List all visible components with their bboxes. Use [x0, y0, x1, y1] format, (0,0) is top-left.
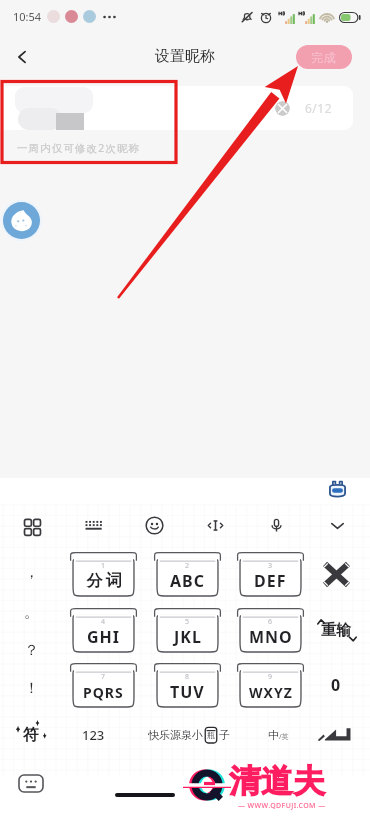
staticText: 设置昵称	[155, 47, 215, 66]
button[interactable]: Delete	[308, 552, 364, 596]
button[interactable]: Apps	[15, 508, 49, 542]
staticText: 123	[82, 726, 105, 744]
staticText: ，	[24, 563, 39, 582]
button[interactable]: 4	[70, 608, 137, 652]
button[interactable]: 快乐源泉小	[124, 717, 254, 753]
button[interactable]: Move cursor	[198, 508, 232, 542]
button[interactable]: 。	[10, 598, 52, 626]
button[interactable]: 123	[70, 717, 116, 753]
staticText: 完成	[311, 50, 337, 65]
button[interactable]: Keyboard theme mascot	[327, 479, 348, 500]
button[interactable]: Hide keyboard	[320, 508, 354, 542]
staticText: 一周内仅可修改2次昵称	[17, 141, 141, 155]
button[interactable]: 6	[237, 608, 304, 652]
staticText: 中	[268, 728, 279, 742]
button[interactable]: Keyboard layout	[76, 508, 110, 542]
button[interactable]: 8	[154, 663, 221, 707]
button[interactable]: 重输	[308, 608, 364, 652]
button[interactable]: 5	[154, 608, 221, 652]
staticText: 瓶	[207, 730, 215, 740]
staticText: 符	[23, 725, 39, 745]
staticText: 清道夫	[229, 761, 325, 801]
button[interactable]: 9	[237, 663, 304, 707]
button[interactable]: Voice input	[259, 508, 293, 542]
staticText: ！	[24, 679, 39, 698]
staticText: JKL	[174, 626, 202, 648]
button[interactable]: ？	[10, 636, 52, 664]
button[interactable]: Clear text	[275, 101, 290, 116]
staticText: 4	[101, 617, 106, 627]
button[interactable]: Clear text	[0, 86, 353, 130]
staticText: 分词	[85, 571, 123, 591]
button[interactable]: Emoji	[137, 508, 171, 542]
button[interactable]: Enter	[306, 717, 364, 753]
staticText: 7	[101, 672, 106, 682]
staticText: DEF	[254, 570, 287, 592]
staticText: 6/12	[305, 100, 333, 116]
staticText: WXYZ	[249, 683, 293, 702]
button[interactable]: 完成	[296, 45, 352, 69]
button[interactable]: 3	[237, 552, 304, 596]
staticText: ABC	[170, 570, 205, 592]
button[interactable]: Back	[0, 33, 44, 81]
staticText: MNO	[249, 626, 293, 648]
staticText: GHI	[87, 626, 121, 648]
staticText: 重输	[321, 621, 351, 640]
staticText: 6	[268, 617, 273, 627]
staticText: 。	[24, 603, 39, 622]
button[interactable]: 7	[70, 663, 137, 707]
staticText: TUV	[170, 681, 205, 703]
button[interactable]: Assistant	[1, 200, 42, 241]
staticText: 0	[331, 674, 341, 696]
staticText: 5	[185, 617, 190, 627]
staticText: 2	[185, 561, 190, 571]
button[interactable]: 1	[70, 552, 137, 596]
staticText: 3	[268, 561, 273, 571]
staticText: 9	[268, 672, 273, 682]
staticText: 10:54	[13, 9, 42, 24]
staticText: PQRS	[83, 683, 124, 702]
button[interactable]: 符	[8, 717, 54, 753]
button[interactable]: Show keyboard	[18, 774, 44, 793]
staticText: /英	[279, 732, 289, 742]
staticText: 1	[101, 561, 106, 571]
button[interactable]: 2	[154, 552, 221, 596]
button[interactable]: 中	[256, 717, 300, 753]
button[interactable]: 0	[308, 663, 364, 707]
button[interactable]: ，	[10, 558, 52, 586]
staticText: 8	[185, 672, 190, 682]
staticText: — WWW.QDFUJI.COM —	[238, 801, 326, 811]
staticText: 快乐源泉小	[148, 728, 203, 742]
staticText: 子	[219, 728, 230, 742]
staticText: ？	[24, 641, 39, 660]
button[interactable]: ！	[10, 674, 52, 702]
